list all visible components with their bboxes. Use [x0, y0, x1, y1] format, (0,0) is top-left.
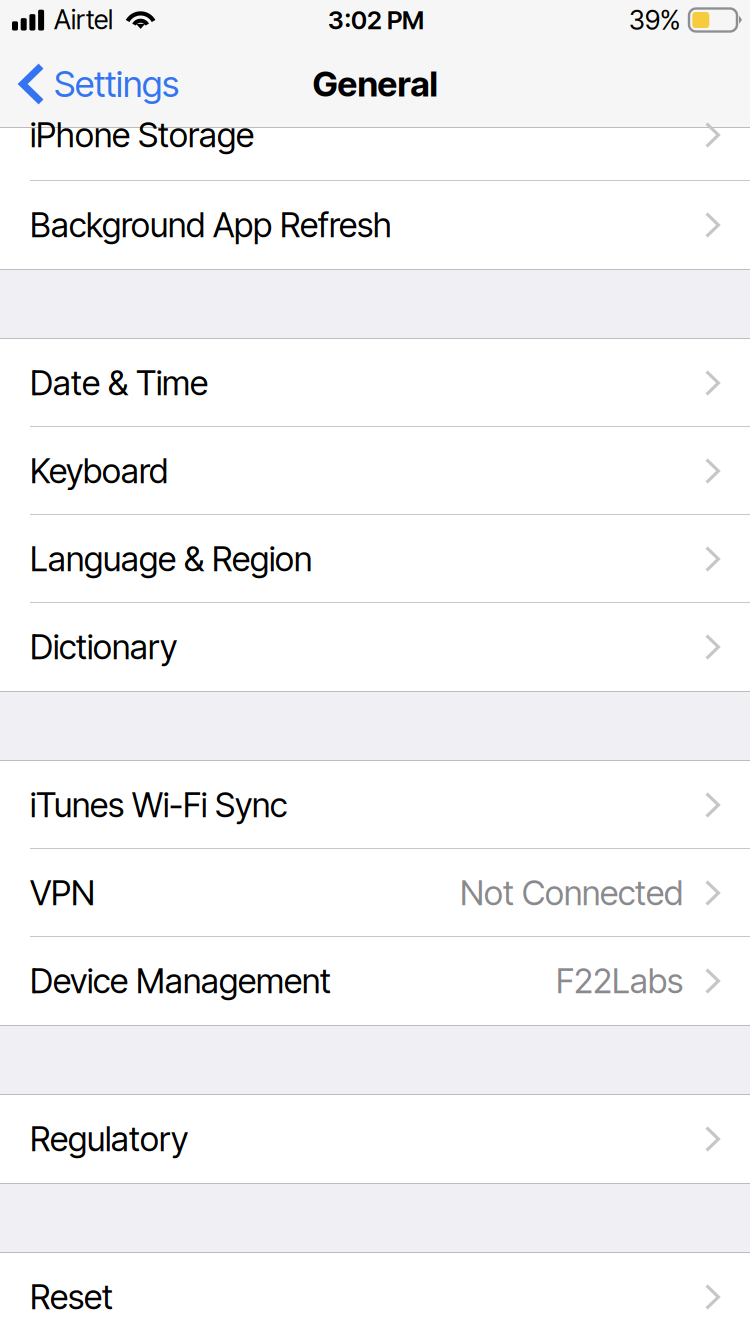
staticText: Not Connected	[460, 872, 683, 913]
button[interactable]: Date & Time	[0, 339, 750, 427]
staticText: Regulatory	[30, 1118, 188, 1159]
button[interactable]: Settings	[0, 40, 230, 128]
button[interactable]: iTunes Wi-Fi Sync	[0, 761, 750, 849]
staticText: VPN	[30, 872, 95, 913]
button[interactable]: Regulatory	[0, 1095, 750, 1183]
staticText: Settings	[54, 62, 179, 106]
button[interactable]: Reset	[0, 1253, 750, 1334]
staticText: Dictionary	[30, 626, 177, 667]
staticText: Background App Refresh	[30, 204, 392, 245]
staticText: Airtel	[54, 3, 113, 36]
staticText: Date & Time	[30, 362, 208, 403]
staticText: 3:02 PM	[328, 5, 424, 35]
button[interactable]: iPhone Storage	[0, 128, 750, 181]
staticText: General	[312, 63, 437, 105]
staticText: iTunes Wi-Fi Sync	[30, 784, 287, 825]
button[interactable]: Language & Region	[0, 515, 750, 603]
staticText: F22Labs	[556, 960, 683, 1001]
staticText: 39%	[629, 4, 680, 36]
button[interactable]: Keyboard	[0, 427, 750, 515]
staticText: iPhone Storage	[30, 114, 254, 155]
staticText: Language & Region	[30, 538, 312, 579]
staticText: Device Management	[30, 960, 331, 1001]
button[interactable]: VPN	[0, 849, 750, 937]
staticText: Reset	[30, 1276, 113, 1317]
button[interactable]: Background App Refresh	[0, 181, 750, 269]
button[interactable]: Dictionary	[0, 603, 750, 691]
button[interactable]: Device Management	[0, 937, 750, 1025]
staticText: Keyboard	[30, 450, 168, 491]
